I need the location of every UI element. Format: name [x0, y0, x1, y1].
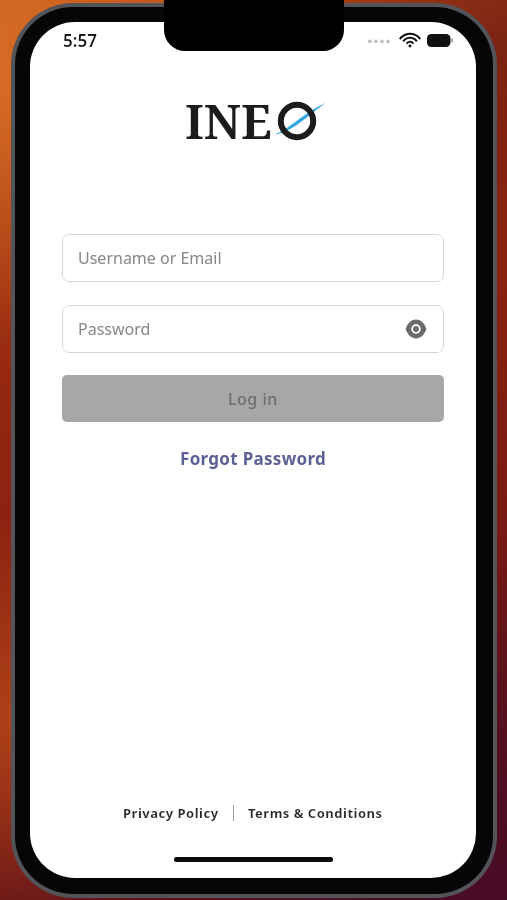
- button[interactable]: Show password: [399, 312, 433, 346]
- staticText: Log in: [228, 388, 278, 410]
- staticText: INE: [185, 89, 272, 153]
- staticText: Terms & Conditions: [248, 804, 383, 822]
- staticText: Forgot Password: [180, 447, 327, 470]
- button[interactable]: Username or Email: [62, 234, 444, 282]
- staticText: Username or Email: [78, 247, 222, 269]
- staticText: 5:57: [63, 29, 97, 52]
- button[interactable]: Log in: [62, 375, 444, 422]
- button[interactable]: Password: [62, 305, 444, 353]
- button[interactable]: Terms & Conditions: [243, 800, 388, 826]
- button[interactable]: Privacy Policy: [118, 800, 224, 826]
- staticText: Privacy Policy: [123, 804, 219, 822]
- staticText: Password: [78, 318, 151, 340]
- button[interactable]: Forgot Password: [170, 442, 337, 475]
